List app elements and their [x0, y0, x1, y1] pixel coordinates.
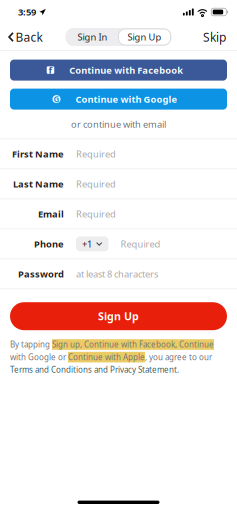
staticText: Password	[18, 268, 64, 280]
staticText: f	[48, 64, 52, 76]
staticText: Terms and Conditions and Privacy Stateme…	[10, 364, 179, 375]
staticText: at least 8 characters	[76, 268, 158, 280]
staticText: with Google or	[10, 352, 68, 362]
staticText: +1	[82, 238, 92, 250]
staticText: or continue with email	[71, 118, 166, 130]
staticText: Skip	[203, 29, 226, 45]
staticText: Sign Up	[98, 309, 139, 323]
staticText: Email	[38, 208, 64, 220]
staticText: Last Name	[13, 178, 64, 190]
staticText: Sign up, Continue with Facebook, Continu…	[52, 339, 214, 350]
staticText: Required	[76, 208, 116, 220]
staticText: Required	[120, 238, 160, 250]
button[interactable]: Back	[0, 24, 42, 50]
button[interactable]: Skip	[203, 24, 237, 50]
button[interactable]: Sign Up	[118, 29, 170, 45]
button[interactable]: Sign In	[66, 29, 118, 45]
staticText: Required	[76, 178, 116, 190]
staticText: Continue with Google	[75, 93, 177, 105]
staticText: Back	[15, 29, 42, 45]
staticText: First Name	[12, 148, 64, 160]
staticText: 3:59	[18, 6, 36, 18]
staticText: Sign Up	[127, 31, 161, 43]
staticText: G	[53, 94, 59, 104]
button[interactable]: Terms and Conditions and Privacy Stateme…	[10, 364, 227, 375]
staticText: Phone	[34, 238, 64, 250]
button[interactable]: Sign Up	[10, 302, 227, 330]
button[interactable]: f	[10, 60, 227, 81]
staticText: By tapping	[10, 339, 52, 350]
staticText: , you agree to our	[145, 352, 212, 362]
staticText: Continue with Facebook	[69, 64, 183, 76]
staticText: Required	[76, 148, 116, 160]
staticText: Sign In	[77, 31, 107, 43]
staticText: Continue with Apple	[68, 352, 145, 362]
button[interactable]: G	[10, 89, 227, 110]
button[interactable]: +1	[76, 236, 108, 251]
